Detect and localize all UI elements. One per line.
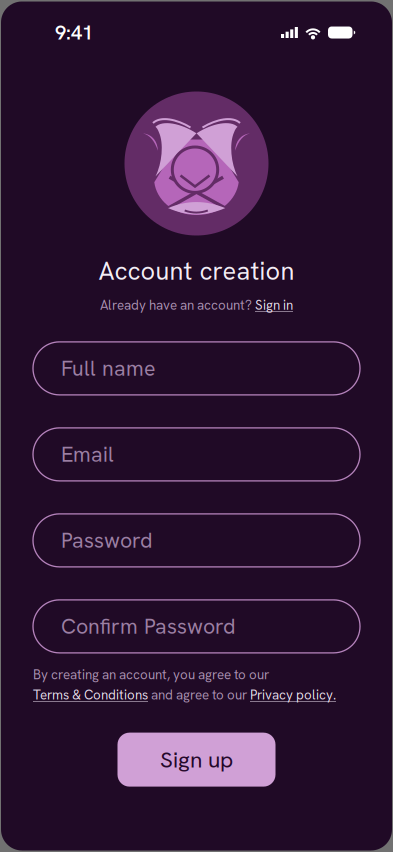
button[interactable]: Privacy policy. [250,686,336,704]
button[interactable]: Sign up [117,733,275,787]
staticText: Full name [61,354,156,382]
staticText: By creating an account, you agree to our [33,666,269,683]
button[interactable]: Confirm Password [33,600,360,653]
button[interactable]: Terms & Conditions [33,686,148,704]
staticText: Privacy policy. [250,686,336,704]
staticText: Account creation [98,254,294,287]
staticText: Already have an account? [100,296,255,314]
button[interactable]: Password [33,514,360,567]
staticText: and agree to our [148,686,250,704]
button[interactable]: Email [33,428,360,481]
staticText: Password [61,526,153,554]
staticText: Email [61,440,114,468]
staticText: 9:41 [55,19,93,46]
staticText: Confirm Password [61,612,236,640]
staticText: Sign in [255,296,293,314]
button[interactable]: Sign in [255,296,293,314]
staticText: Terms & Conditions [33,686,148,704]
staticText: Sign up [160,745,233,774]
button[interactable]: Full name [33,342,360,395]
